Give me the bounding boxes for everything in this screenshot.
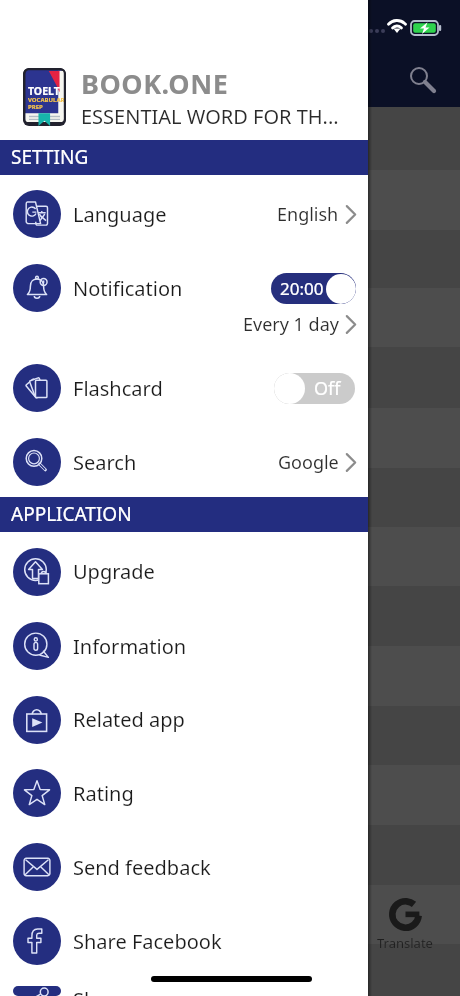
- staticText: Search: [73, 449, 137, 476]
- staticText: 20:00: [280, 277, 324, 300]
- staticText: Flashcard: [73, 375, 163, 402]
- button[interactable]: Rating: [0, 756, 368, 830]
- button[interactable]: Off: [274, 373, 355, 404]
- button[interactable]: Related app: [0, 683, 368, 756]
- staticText: Notification: [73, 275, 183, 302]
- staticText: VOCABULARY: [28, 96, 66, 104]
- staticText: Rating: [73, 780, 134, 807]
- staticText: Send feedback: [73, 854, 211, 881]
- staticText: Google: [278, 450, 339, 475]
- staticText: Translate: [377, 934, 433, 952]
- staticText: TOELT: [28, 84, 60, 98]
- button[interactable]: Search: [398, 56, 442, 100]
- staticText: BOOK.ONE: [81, 65, 229, 102]
- staticText: Off: [314, 376, 341, 401]
- staticText: Information: [73, 633, 187, 660]
- button[interactable]: Share Facebook: [0, 904, 368, 978]
- button[interactable]: Upgrade: [0, 534, 368, 609]
- button[interactable]: Search: [0, 427, 368, 497]
- button[interactable]: Notification: [0, 251, 368, 325]
- button[interactable]: TOELT: [0, 54, 368, 140]
- staticText: PREP: [28, 103, 43, 111]
- staticText: Share Facebook: [73, 928, 222, 955]
- button[interactable]: Send feedback: [0, 830, 368, 904]
- staticText: Share app: [73, 986, 168, 996]
- button[interactable]: Share app: [0, 986, 368, 996]
- button[interactable]: Every 1 day: [243, 312, 368, 337]
- staticText: SETTING: [11, 144, 89, 170]
- staticText: APPLICATION: [11, 501, 132, 527]
- button[interactable]: 20:00: [271, 273, 356, 304]
- staticText: Language: [73, 201, 167, 228]
- staticText: English: [277, 202, 339, 227]
- button[interactable]: Google Translate: [374, 898, 436, 952]
- button[interactable]: Information: [0, 609, 368, 683]
- staticText: Related app: [73, 706, 185, 733]
- staticText: Every 1 day: [243, 312, 339, 337]
- staticText: Upgrade: [73, 558, 155, 585]
- button[interactable]: Flashcard: [0, 351, 368, 425]
- button[interactable]: Language: [0, 177, 368, 251]
- staticText: ESSENTIAL WORD FOR TH...: [81, 103, 339, 130]
